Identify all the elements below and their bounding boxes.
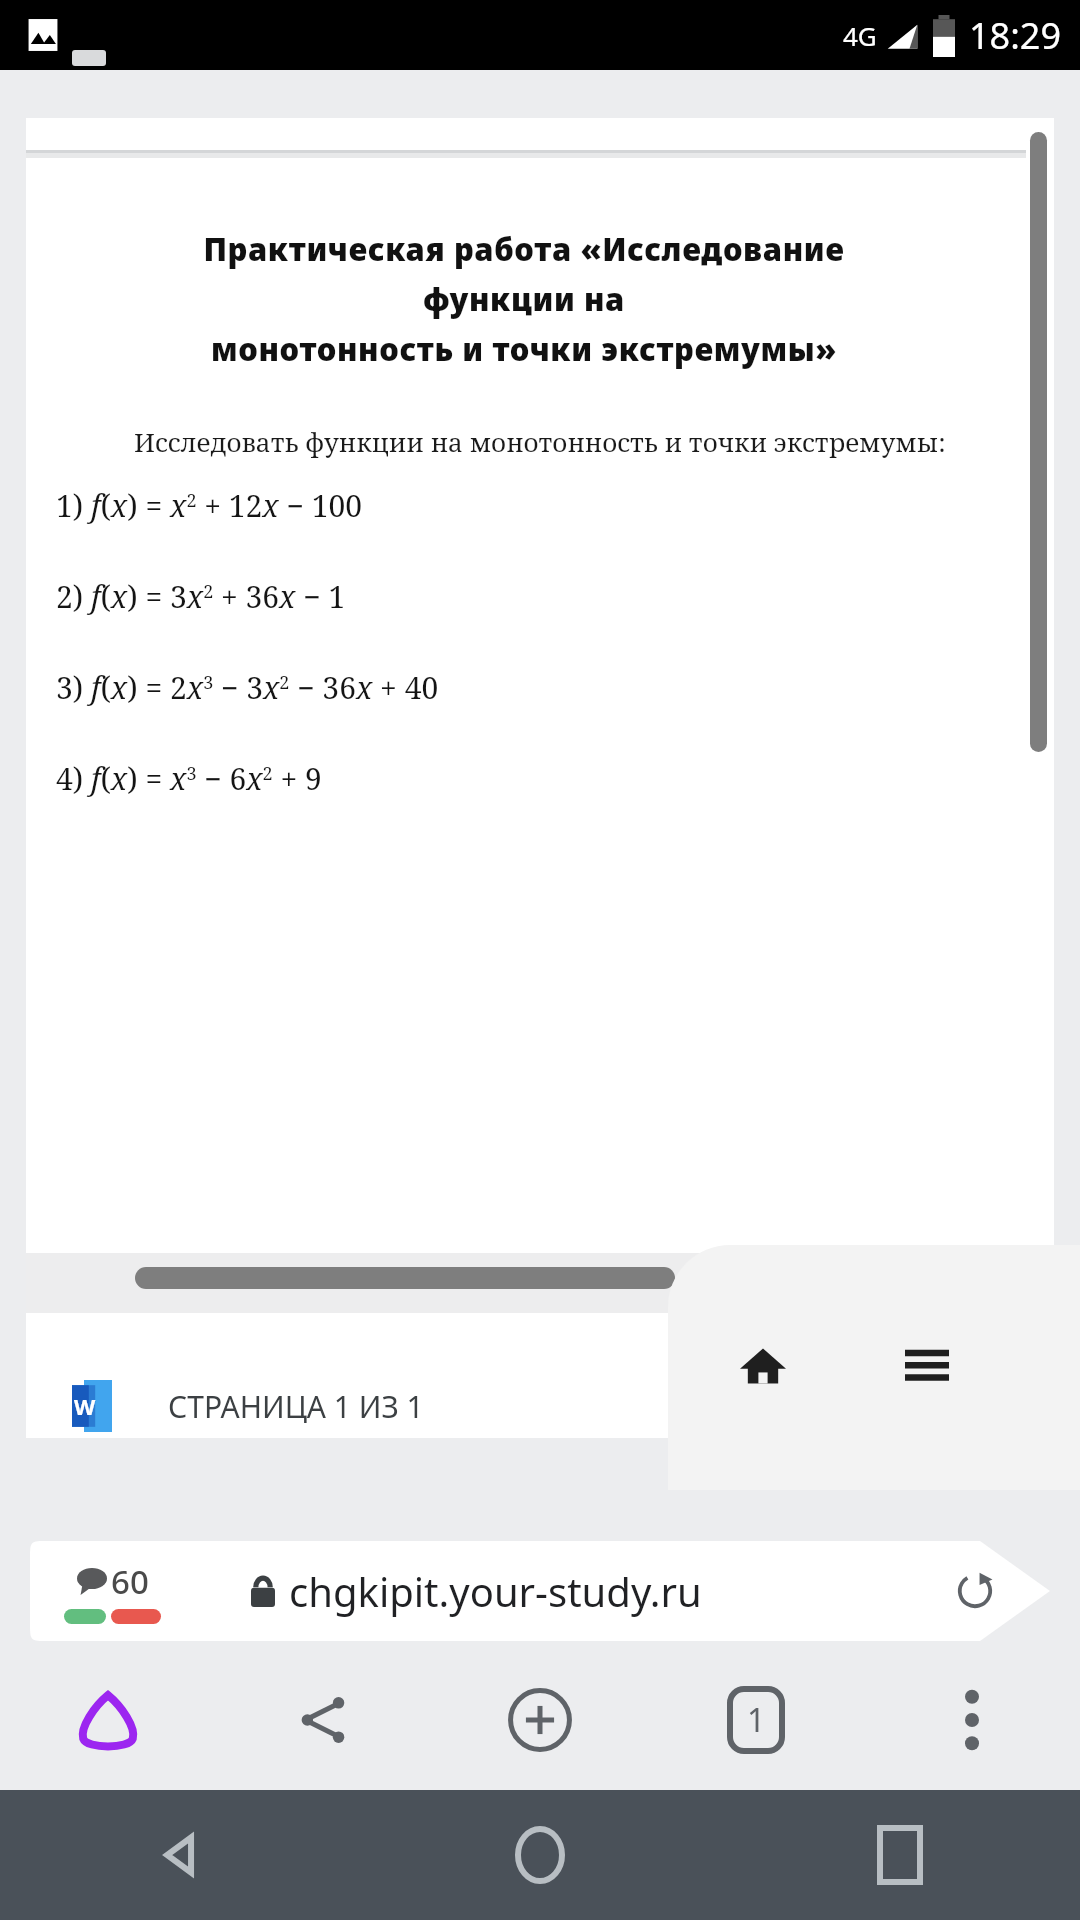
staticText: 3) f(x) = 2x3 − 3x2 − 36x + 40 bbox=[56, 667, 1022, 708]
staticText: W bbox=[74, 1391, 96, 1421]
staticText: chgkipit.your-study.ru bbox=[289, 1564, 702, 1618]
staticText: 4) f(x) = x3 − 6x2 + 9 bbox=[56, 758, 1022, 799]
staticText: 1) f(x) = x2 + 12x − 100 bbox=[56, 485, 1022, 526]
staticText: 2) f(x) = 3x2 + 36x − 1 bbox=[56, 576, 1022, 617]
button[interactable]: Share bbox=[216, 1650, 432, 1790]
button[interactable]: Back bbox=[0, 1790, 360, 1920]
button[interactable]: Menu bbox=[884, 1323, 970, 1409]
button[interactable]: 60 bbox=[30, 1541, 1050, 1641]
staticText: СТРАНИЦА 1 ИЗ 1 bbox=[168, 1386, 424, 1427]
staticText: 18:29 bbox=[969, 11, 1062, 60]
button[interactable]: Home bbox=[720, 1323, 806, 1409]
button[interactable]: Home bbox=[360, 1790, 720, 1920]
staticText: 4G bbox=[843, 18, 877, 53]
button[interactable]: Recents bbox=[720, 1790, 1080, 1920]
staticText: 60 bbox=[111, 1559, 149, 1604]
button[interactable]: Browser home bbox=[0, 1650, 216, 1790]
staticText: Исследовать функции на монотонность и то… bbox=[134, 424, 1022, 459]
staticText: 1 bbox=[747, 1698, 766, 1742]
staticText: Практическая работа «Исследование функци… bbox=[150, 228, 898, 370]
button[interactable]: New tab bbox=[432, 1650, 648, 1790]
button[interactable]: W bbox=[26, 1374, 1022, 1438]
button[interactable]: More options bbox=[864, 1650, 1080, 1790]
button[interactable]: Tabs: 1 bbox=[648, 1650, 864, 1790]
button[interactable]: Reload bbox=[940, 1556, 1010, 1626]
